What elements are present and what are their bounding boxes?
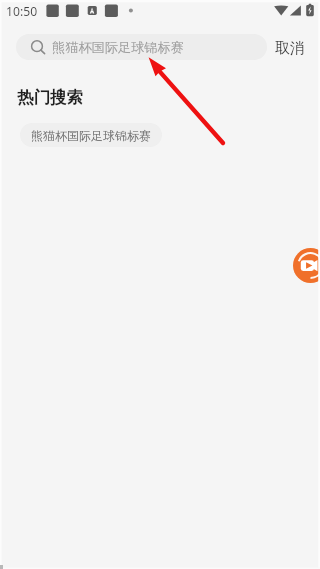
button[interactable]: 熊猫杯国际足球锦标赛 <box>16 34 267 60</box>
staticText: 熊猫杯国际足球锦标赛 <box>31 128 151 143</box>
staticText: 熊猫杯国际足球锦标赛 <box>52 39 184 56</box>
staticText: 取消 <box>275 39 305 58</box>
button[interactable]: 熊猫杯国际足球锦标赛 <box>20 123 162 147</box>
button[interactable]: Live video <box>293 248 320 283</box>
staticText: 热门搜索 <box>17 87 83 108</box>
button[interactable]: 取消 <box>271 33 309 64</box>
staticText: 10:50 <box>6 3 38 20</box>
